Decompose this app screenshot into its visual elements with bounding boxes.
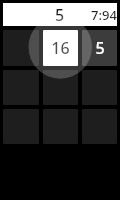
staticText: 7:94 <box>91 6 117 24</box>
button[interactable]: 5 <box>3 3 117 26</box>
button[interactable]: 16 <box>43 30 78 66</box>
staticText: 16 <box>51 37 70 59</box>
staticText: 5 <box>55 4 65 26</box>
staticText: 5 <box>95 37 105 59</box>
button[interactable]: 5 <box>82 30 117 66</box>
button[interactable] <box>3 30 39 66</box>
button[interactable] <box>43 70 78 105</box>
